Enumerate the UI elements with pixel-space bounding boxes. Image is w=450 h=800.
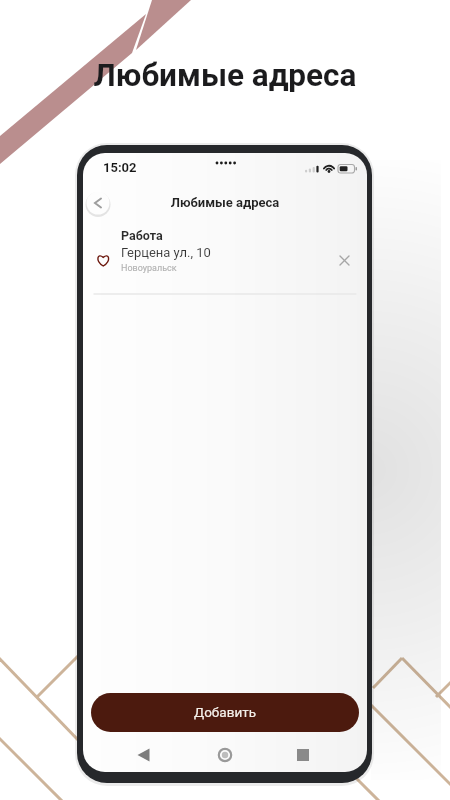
button[interactable] bbox=[331, 249, 349, 267]
staticText: Новоуральск bbox=[121, 263, 177, 274]
staticText: 15:02 bbox=[103, 160, 137, 175]
staticText: Любимые адреса bbox=[83, 195, 367, 210]
button[interactable] bbox=[210, 740, 240, 770]
staticText: Работа bbox=[121, 228, 163, 243]
staticText: Добавить bbox=[194, 704, 256, 720]
button[interactable] bbox=[129, 740, 159, 770]
button[interactable]: Добавить bbox=[91, 693, 359, 732]
staticText: Любимые адреса bbox=[0, 57, 450, 94]
staticText: Герцена ул., 10 bbox=[121, 245, 211, 260]
button[interactable]: Работа bbox=[83, 224, 367, 294]
button[interactable] bbox=[288, 740, 318, 770]
button[interactable] bbox=[86, 191, 110, 215]
